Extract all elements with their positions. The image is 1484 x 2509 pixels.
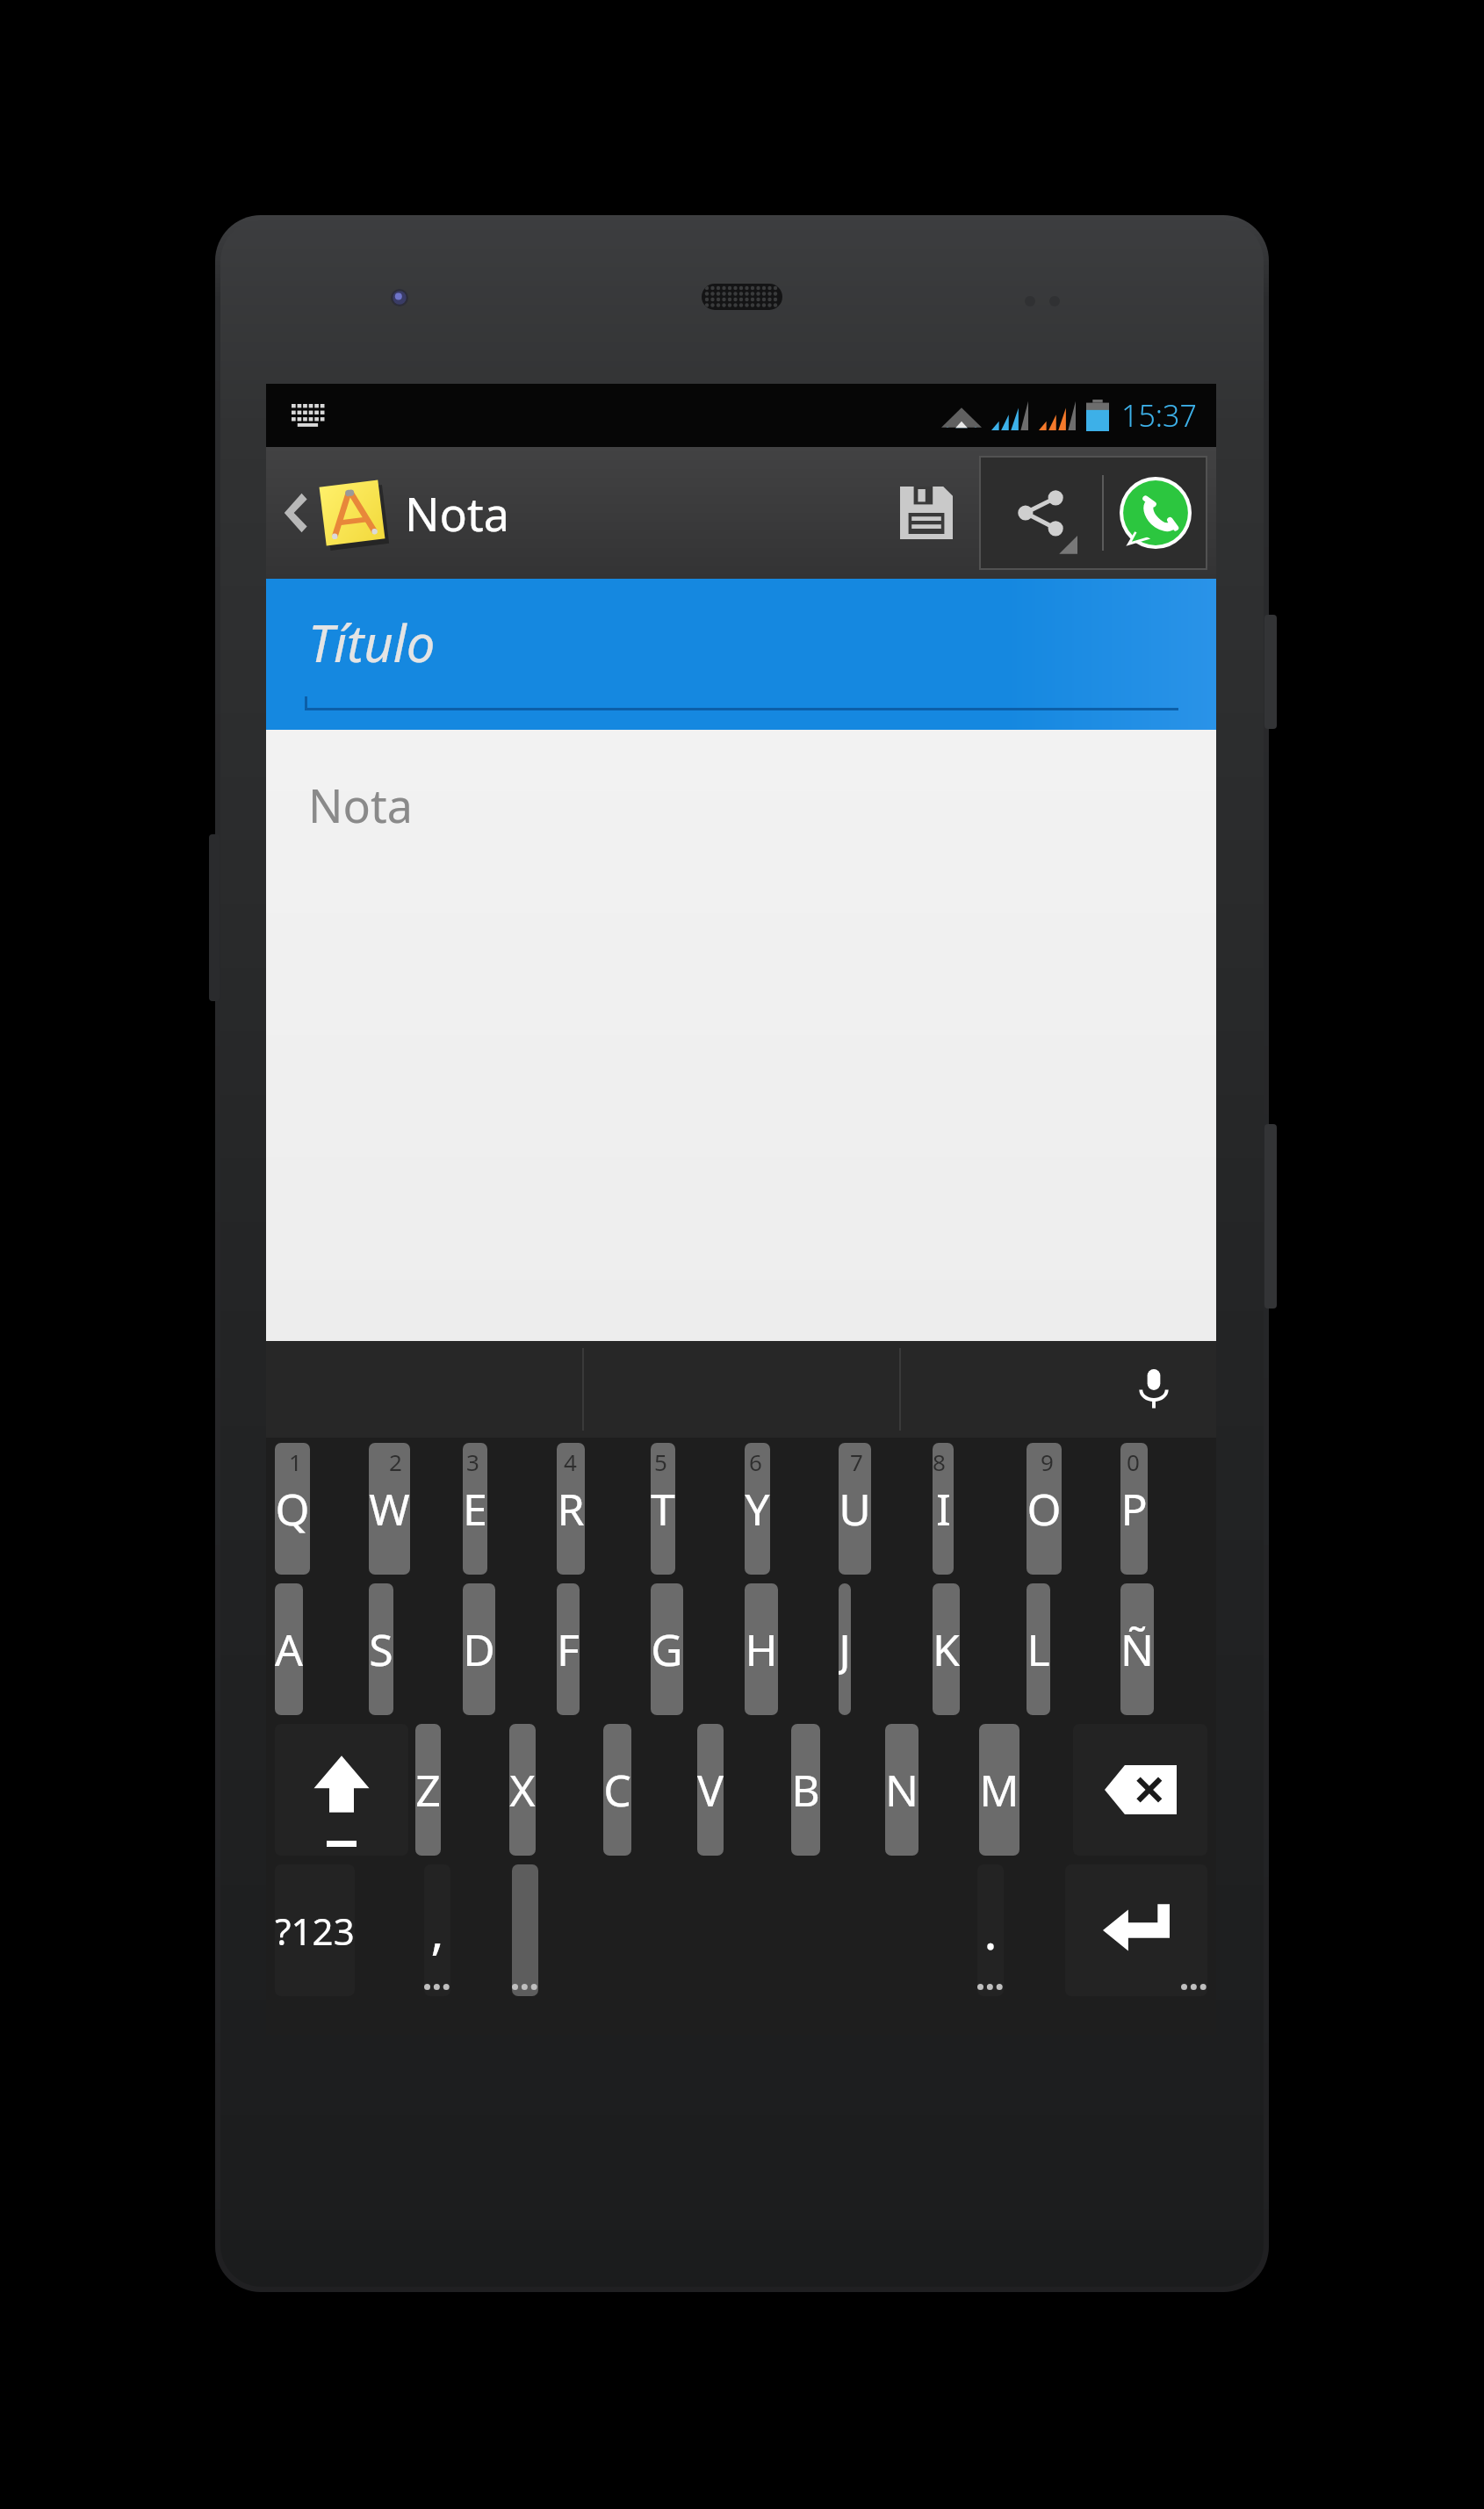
button[interactable]: C bbox=[603, 1724, 631, 1856]
button[interactable] bbox=[266, 1341, 582, 1438]
staticText: E bbox=[463, 1479, 487, 1539]
button[interactable] bbox=[901, 1341, 1216, 1438]
other: Back bbox=[278, 490, 308, 536]
button[interactable]: Y bbox=[745, 1443, 770, 1575]
staticText: W bbox=[369, 1479, 410, 1539]
button[interactable]: M bbox=[979, 1724, 1019, 1856]
staticText: V bbox=[697, 1760, 724, 1820]
staticText: 5 bbox=[654, 1446, 667, 1477]
button[interactable]: Save bbox=[874, 447, 979, 579]
staticText: A bbox=[275, 1619, 303, 1679]
staticText: 7 bbox=[850, 1446, 863, 1477]
button[interactable] bbox=[512, 1864, 538, 1996]
button[interactable]: Back bbox=[266, 447, 523, 579]
button[interactable]: U bbox=[839, 1443, 871, 1575]
staticText: K bbox=[933, 1619, 960, 1679]
staticText: Nota bbox=[405, 482, 509, 544]
other: Enter bbox=[1065, 1864, 1207, 1996]
staticText: C bbox=[603, 1760, 631, 1820]
button[interactable]: R bbox=[557, 1443, 585, 1575]
staticText: ?123 bbox=[275, 1906, 355, 1956]
other: Backspace bbox=[1073, 1724, 1207, 1856]
staticText: R bbox=[557, 1479, 585, 1539]
button[interactable]: F bbox=[557, 1583, 580, 1715]
staticText: S bbox=[369, 1619, 393, 1679]
button[interactable]: G bbox=[651, 1583, 683, 1715]
button[interactable]: P bbox=[1120, 1443, 1148, 1575]
button[interactable]: N bbox=[885, 1724, 918, 1856]
button[interactable]: Nota bbox=[266, 730, 1216, 1341]
button[interactable]: S bbox=[369, 1583, 393, 1715]
button[interactable]: Backspace bbox=[1073, 1724, 1207, 1856]
button[interactable] bbox=[584, 1341, 899, 1438]
staticText: 6 bbox=[749, 1446, 762, 1477]
button[interactable]: B bbox=[791, 1724, 820, 1856]
button[interactable]: Q bbox=[275, 1443, 310, 1575]
staticText: 4 bbox=[564, 1446, 577, 1477]
button[interactable]: Título bbox=[266, 579, 1216, 730]
staticText: 0 bbox=[1127, 1446, 1140, 1477]
button[interactable]: J bbox=[839, 1583, 851, 1715]
staticText: L bbox=[1027, 1619, 1050, 1679]
staticText: 3 bbox=[466, 1446, 479, 1477]
staticText: F bbox=[557, 1619, 580, 1679]
staticText: Z bbox=[415, 1760, 441, 1820]
staticText: , bbox=[430, 1897, 444, 1964]
staticText: 15:37 bbox=[1121, 395, 1197, 436]
staticText: G bbox=[651, 1619, 683, 1679]
staticText: B bbox=[791, 1760, 820, 1820]
staticText: Título bbox=[308, 608, 436, 677]
button[interactable]: Enter bbox=[1065, 1864, 1207, 1996]
button[interactable]: O bbox=[1027, 1443, 1062, 1575]
button[interactable]: W bbox=[369, 1443, 410, 1575]
button[interactable]: D bbox=[463, 1583, 495, 1715]
button[interactable]: L bbox=[1027, 1583, 1050, 1715]
button[interactable]: I bbox=[933, 1443, 954, 1575]
button[interactable]: K bbox=[933, 1583, 960, 1715]
staticText: T bbox=[651, 1479, 675, 1539]
staticText: Q bbox=[275, 1479, 310, 1539]
staticText: D bbox=[463, 1619, 495, 1679]
button[interactable]: Ñ bbox=[1120, 1583, 1154, 1715]
staticText: N bbox=[885, 1760, 918, 1820]
staticText: Ñ bbox=[1120, 1619, 1154, 1679]
button[interactable]: , bbox=[424, 1864, 450, 1996]
staticText: O bbox=[1027, 1479, 1062, 1539]
button[interactable]: H bbox=[745, 1583, 778, 1715]
staticText: I bbox=[936, 1479, 951, 1539]
button[interactable]: A bbox=[275, 1583, 303, 1715]
button[interactable]: Shift bbox=[275, 1724, 408, 1856]
staticText: Y bbox=[745, 1479, 770, 1539]
button[interactable]: Send via WhatsApp bbox=[1104, 456, 1207, 570]
staticText: H bbox=[745, 1619, 778, 1679]
button[interactable]: Share bbox=[979, 456, 1102, 570]
other: Shift bbox=[275, 1724, 408, 1856]
button[interactable]: T bbox=[651, 1443, 675, 1575]
staticText: 1 bbox=[289, 1446, 302, 1477]
staticText: P bbox=[1120, 1479, 1148, 1539]
button[interactable]: Z bbox=[415, 1724, 441, 1856]
staticText: M bbox=[979, 1760, 1019, 1820]
button[interactable]: . bbox=[977, 1864, 1004, 1996]
button[interactable]: E bbox=[463, 1443, 487, 1575]
button[interactable]: X bbox=[509, 1724, 536, 1856]
staticText: 2 bbox=[389, 1446, 402, 1477]
staticText: . bbox=[983, 1897, 998, 1964]
staticText: 8 bbox=[933, 1446, 946, 1477]
staticText: Nota bbox=[308, 774, 413, 836]
button[interactable]: Voice input bbox=[1130, 1366, 1178, 1413]
button[interactable]: ?123 bbox=[275, 1864, 355, 1996]
staticText: 9 bbox=[1041, 1446, 1054, 1477]
button[interactable]: V bbox=[697, 1724, 724, 1856]
staticText: U bbox=[839, 1479, 871, 1539]
staticText: J bbox=[839, 1619, 851, 1679]
staticText: X bbox=[509, 1760, 536, 1820]
